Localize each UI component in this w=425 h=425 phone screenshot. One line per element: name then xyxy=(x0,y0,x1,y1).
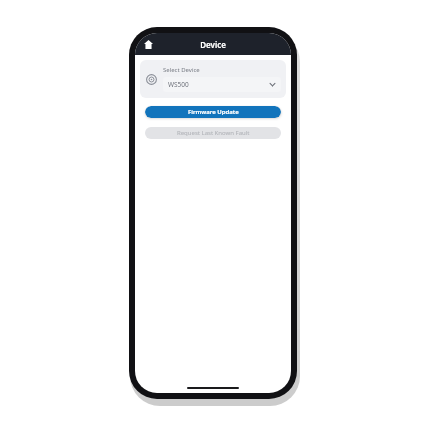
button[interactable]: Home xyxy=(140,36,156,52)
button[interactable]: WS500 xyxy=(163,77,281,92)
button[interactable]: Select Device xyxy=(140,60,286,98)
staticText: Request Last Known Fault xyxy=(177,129,250,137)
staticText: Device xyxy=(200,39,226,50)
staticText: WS500 xyxy=(168,80,269,89)
staticText: Select Device xyxy=(163,66,200,74)
button[interactable]: Firmware Update xyxy=(145,106,281,118)
button[interactable]: Request Last Known Fault xyxy=(145,127,281,139)
staticText: Firmware Update xyxy=(188,108,239,116)
